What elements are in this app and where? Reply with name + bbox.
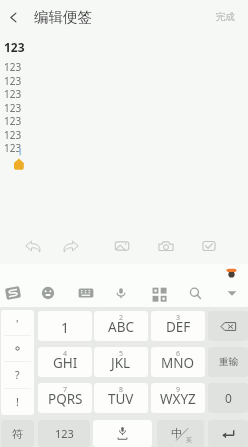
staticText: 123: [55, 426, 74, 441]
staticText: JKL: [111, 354, 131, 372]
staticText: 123: [4, 60, 22, 74]
staticText: MNO: [161, 354, 195, 372]
button[interactable]: Keyboard layout: [73, 280, 99, 306]
button[interactable]: 9: [151, 383, 205, 413]
staticText: 重输: [219, 356, 238, 368]
button[interactable]: 完成: [216, 0, 235, 31]
staticText: 123: [4, 87, 22, 101]
button[interactable]: Voice input: [108, 280, 134, 306]
staticText: WXYZ: [160, 390, 196, 408]
button[interactable]: Emoji: [35, 280, 61, 306]
staticText: 1: [61, 318, 70, 337]
button[interactable]: Account: [225, 264, 238, 277]
staticText: 0: [225, 390, 232, 406]
staticText: 123: [4, 39, 25, 55]
staticText: 英: [186, 436, 192, 444]
staticText: 5: [119, 349, 124, 359]
button[interactable]: 8: [94, 383, 148, 413]
button[interactable]: 5: [94, 347, 148, 377]
button[interactable]: Hide keyboard: [219, 280, 245, 306]
button[interactable]: Undo: [19, 232, 47, 260]
button[interactable]: 3: [151, 311, 205, 341]
staticText: 123: [4, 114, 22, 128]
staticText: 123: [4, 101, 22, 115]
staticText: 中: [171, 426, 182, 440]
staticText: 2: [119, 313, 124, 323]
button[interactable]: Redo: [57, 232, 85, 260]
staticText: 完成: [216, 11, 235, 23]
staticText: DEF: [166, 318, 191, 336]
staticText: 8: [119, 385, 124, 395]
button[interactable]: [1, 336, 34, 361]
staticText: 编辑便签: [34, 8, 92, 26]
button[interactable]: 123: [38, 420, 90, 447]
button[interactable]: 0: [208, 383, 248, 413]
button[interactable]: 符: [1, 420, 34, 447]
staticText: 3: [176, 313, 181, 323]
staticText: 123: [4, 141, 22, 155]
button[interactable]: !: [1, 389, 34, 415]
staticText: PQRS: [48, 390, 83, 408]
button[interactable]: Search: [182, 280, 208, 306]
staticText: 7: [63, 385, 68, 395]
staticText: ?: [15, 368, 20, 382]
button[interactable]: Input method: [0, 280, 26, 306]
button[interactable]: Back: [0, 0, 26, 31]
button[interactable]: Take photo: [152, 232, 180, 260]
staticText: ABC: [108, 318, 134, 336]
button[interactable]: Checklist: [195, 232, 223, 260]
button[interactable]: ': [1, 310, 34, 335]
button[interactable]: 中: [157, 420, 204, 447]
staticText: 6: [176, 349, 181, 359]
staticText: 4: [63, 349, 68, 359]
button[interactable]: More tools: [146, 280, 172, 306]
staticText: ': [16, 317, 19, 331]
staticText: 123: [4, 74, 22, 88]
button[interactable]: 2: [94, 311, 148, 341]
staticText: TUV: [108, 390, 134, 408]
button[interactable]: Insert image: [108, 232, 136, 260]
staticText: 符: [12, 427, 23, 441]
button[interactable]: 重输: [208, 347, 248, 377]
staticText: !: [16, 395, 19, 409]
button[interactable]: 4: [38, 347, 92, 377]
button[interactable]: Backspace: [208, 311, 248, 341]
button[interactable]: Enter: [208, 420, 248, 447]
staticText: 9: [176, 385, 181, 395]
staticText: 123: [4, 128, 22, 142]
staticText: GHI: [53, 354, 78, 372]
button[interactable]: 7: [38, 383, 92, 413]
button[interactable]: 1: [38, 311, 92, 341]
button[interactable]: Space: [93, 420, 152, 447]
button[interactable]: 6: [151, 347, 205, 377]
button[interactable]: ?: [1, 362, 34, 388]
